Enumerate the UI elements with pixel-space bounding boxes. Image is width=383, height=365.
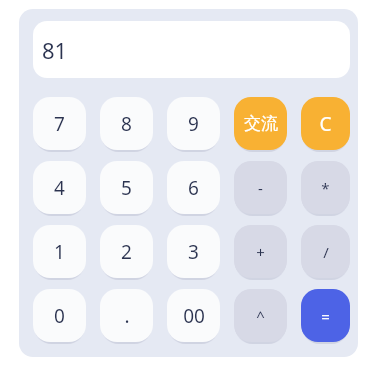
staticText: 0 [54,303,65,329]
staticText: / [323,242,329,262]
button[interactable]: 6 [167,161,220,214]
button[interactable]: C [301,97,350,150]
staticText: 8 [121,111,132,137]
staticText: . [124,303,130,329]
staticText: 9 [188,111,199,137]
staticText: 00 [183,303,205,329]
button[interactable]: 5 [100,161,153,214]
staticText: 5 [121,175,132,201]
button[interactable]: / [301,225,350,278]
button[interactable]: 9 [167,97,220,150]
button[interactable]: ^ [234,289,287,342]
button[interactable]: = [301,289,350,342]
staticText: 交流 [244,113,278,134]
button[interactable]: 00 [167,289,220,342]
button[interactable]: * [301,161,350,214]
button[interactable]: 3 [167,225,220,278]
button[interactable]: 7 [33,97,86,150]
button[interactable]: + [234,225,287,278]
button[interactable]: 0 [33,289,86,342]
button[interactable]: 交流 [234,97,287,150]
button[interactable]: 4 [33,161,86,214]
staticText: 6 [188,175,199,201]
button[interactable]: 1 [33,225,86,278]
staticText: * [321,178,330,198]
staticText: ^ [256,306,265,326]
button[interactable]: 81 [33,21,350,78]
staticText: 81 [42,35,68,65]
button[interactable]: . [100,289,153,342]
staticText: 2 [121,239,132,265]
staticText: - [258,178,263,198]
button[interactable]: - [234,161,287,214]
staticText: C [319,111,332,137]
button[interactable]: 8 [100,97,153,150]
staticText: 3 [188,239,199,265]
staticText: + [256,242,265,262]
staticText: = [321,306,330,326]
button[interactable]: 2 [100,225,153,278]
staticText: 7 [54,111,65,137]
staticText: 1 [54,239,65,265]
staticText: 4 [54,175,65,201]
